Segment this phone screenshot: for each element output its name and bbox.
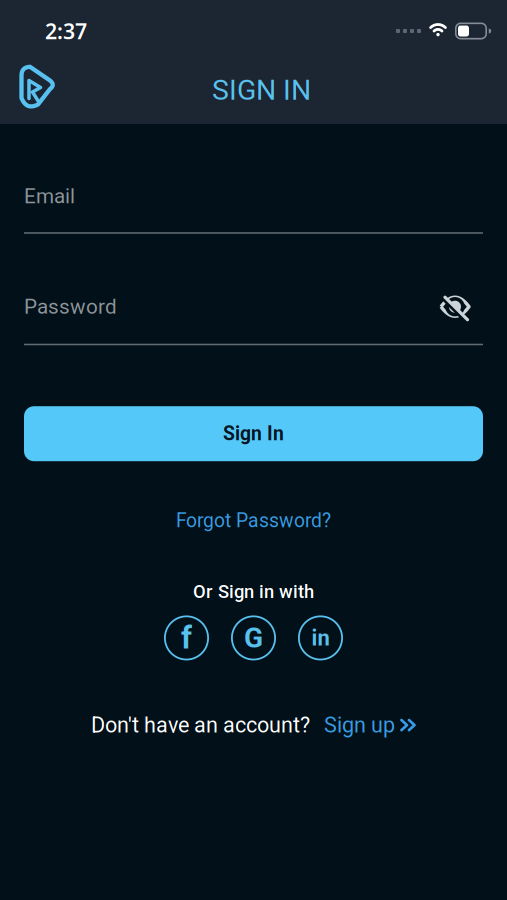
button[interactable]: in	[298, 615, 343, 660]
staticText: Don't have an account?	[91, 712, 310, 738]
staticText: Or Sign in with	[193, 581, 314, 602]
button[interactable]: Sign In	[24, 406, 483, 461]
staticText: in	[311, 625, 329, 651]
staticText: Sign In	[223, 422, 284, 445]
staticText: SIGN IN	[212, 73, 311, 107]
button[interactable]	[439, 291, 471, 323]
staticText: Email	[24, 184, 75, 208]
staticText: 2:37	[45, 17, 87, 45]
button[interactable]: Sign up	[324, 712, 416, 738]
button[interactable]: Forgot Password?	[176, 509, 331, 532]
staticText: Forgot Password?	[176, 509, 331, 532]
staticText: Sign up	[324, 712, 395, 738]
staticText: Password	[24, 295, 117, 319]
staticText: f	[181, 620, 192, 656]
button[interactable]: f	[164, 615, 209, 660]
button[interactable]: G	[231, 615, 276, 660]
staticText: G	[244, 621, 263, 654]
